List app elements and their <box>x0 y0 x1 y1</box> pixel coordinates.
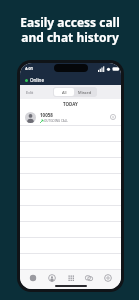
staticText: 10058 <box>40 112 53 118</box>
staticText: All <box>62 90 67 95</box>
button[interactable]: Settings <box>102 272 114 284</box>
staticText: Edit <box>26 90 34 95</box>
button[interactable]: Recents <box>27 272 39 284</box>
staticText: OUTGOING CALL <box>44 119 68 123</box>
button[interactable]: Missed <box>74 88 96 96</box>
staticText: 4:01 <box>25 66 33 71</box>
staticText: TODAY <box>63 101 78 107</box>
button[interactable]: Keypad <box>65 272 77 284</box>
button[interactable]: Contacts <box>46 272 58 284</box>
button[interactable]: Chats <box>83 272 95 284</box>
staticText: Online <box>30 77 44 83</box>
button[interactable]: Call details <box>110 114 116 120</box>
button[interactable]: 10058 <box>20 109 121 125</box>
staticText: Missed <box>78 90 92 95</box>
staticText: Easily access call and chat history <box>20 14 120 45</box>
button[interactable]: Edit <box>25 89 35 96</box>
button[interactable]: All <box>54 88 74 96</box>
